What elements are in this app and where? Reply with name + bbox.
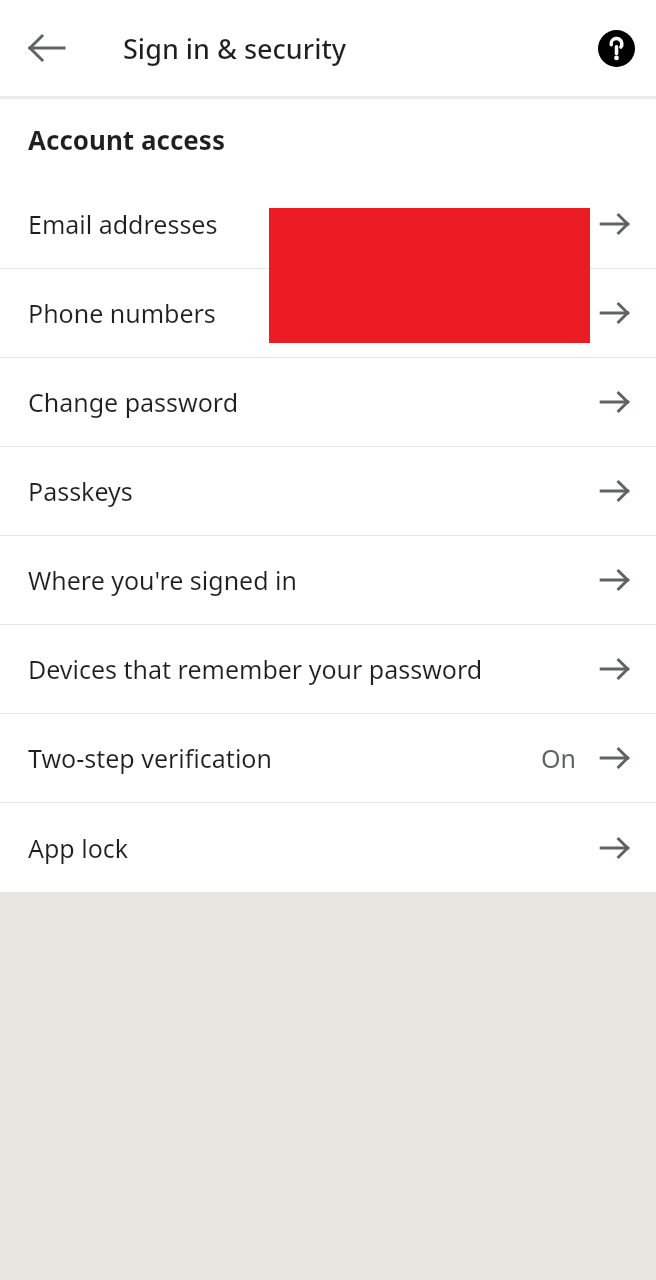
button[interactable]: Phone numbers: [0, 269, 656, 357]
staticText: Account access: [28, 122, 225, 157]
staticText: Passkeys: [28, 474, 592, 508]
button[interactable]: Email addresses: [0, 180, 656, 268]
button[interactable]: Help: [584, 16, 648, 80]
staticText: App lock: [28, 831, 592, 865]
button[interactable]: Where you're signed in: [0, 536, 656, 624]
button[interactable]: Passkeys: [0, 447, 656, 535]
button[interactable]: App lock: [0, 803, 656, 892]
button[interactable]: Devices that remember your password: [0, 625, 656, 713]
button[interactable]: Back: [12, 14, 80, 82]
staticText: Where you're signed in: [28, 563, 592, 597]
staticText: Two-step verification: [28, 741, 541, 775]
button[interactable]: Change password: [0, 358, 656, 446]
staticText: Sign in & security: [123, 30, 347, 67]
button[interactable]: Two-step verification: [0, 714, 656, 802]
staticText: Phone numbers: [28, 296, 592, 330]
staticText: Devices that remember your password: [28, 652, 592, 686]
staticText: Email addresses: [28, 207, 592, 241]
staticText: On: [541, 741, 576, 775]
staticText: Change password: [28, 385, 592, 419]
